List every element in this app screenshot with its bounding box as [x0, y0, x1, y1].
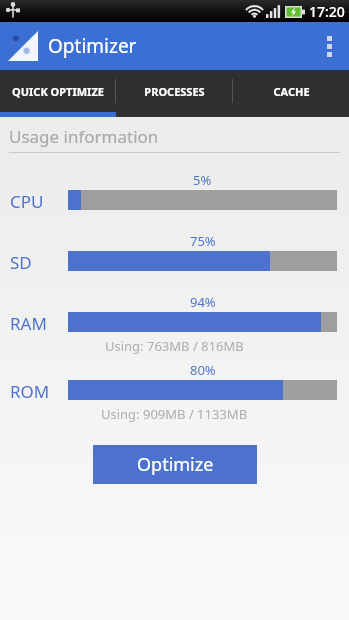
staticText: QUICK OPTIMIZE: [12, 84, 104, 99]
staticText: CPU: [10, 190, 44, 210]
staticText: Using: 909MB / 1133MB: [101, 405, 248, 423]
staticText: RAM: [10, 312, 47, 332]
staticText: Usage information: [9, 125, 159, 148]
staticText: 75%: [190, 232, 216, 250]
staticText: Optimize: [137, 452, 214, 477]
button[interactable]: QUICK OPTIMIZE: [0, 70, 115, 112]
button[interactable]: More options: [309, 22, 349, 70]
staticText: 94%: [190, 293, 216, 311]
staticText: 5%: [193, 171, 212, 189]
staticText: Optimizer: [48, 33, 137, 59]
button[interactable]: PROCESSES: [116, 70, 232, 112]
staticText: SD: [10, 251, 32, 271]
staticText: 17:20: [309, 2, 345, 21]
staticText: Using: 763MB / 816MB: [105, 337, 244, 355]
staticText: 80%: [190, 361, 216, 379]
staticText: CACHE: [273, 84, 310, 99]
staticText: ROM: [10, 380, 50, 400]
button[interactable]: CACHE: [233, 70, 349, 112]
button[interactable]: Optimize: [93, 445, 257, 484]
staticText: PROCESSES: [144, 84, 205, 99]
